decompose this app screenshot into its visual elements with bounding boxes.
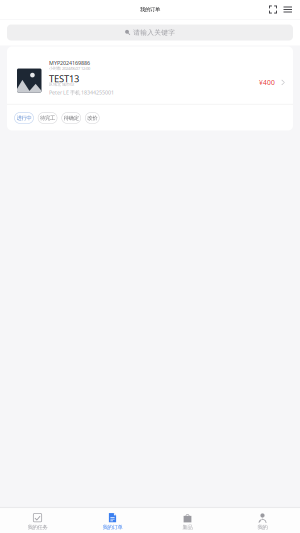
- staticText: 我的订单: [140, 6, 160, 13]
- staticText: 区域北 城市02: [49, 81, 74, 87]
- staticText: 我的订单: [102, 524, 122, 531]
- button[interactable]: 菜单: [280, 2, 296, 17]
- staticText: 小时数 2024/06/27 12:00: [49, 66, 90, 71]
- button[interactable]: 扫一扫: [266, 1, 280, 17]
- staticText: TEST13: [49, 72, 79, 85]
- button[interactable]: 进行中: [14, 112, 33, 123]
- button[interactable]: 待确定: [62, 112, 81, 123]
- staticText: 改价: [87, 115, 97, 121]
- button[interactable]: 我的: [225, 507, 300, 533]
- staticText: ¥400: [259, 78, 275, 87]
- staticText: 我的: [257, 524, 267, 531]
- button[interactable]: 改价: [85, 112, 99, 123]
- button[interactable]: 新品: [150, 507, 225, 533]
- button[interactable]: 我的任务: [0, 507, 75, 533]
- staticText: 待完工: [40, 115, 55, 121]
- staticText: 待确定: [64, 115, 79, 121]
- staticText: 请输入关键字: [133, 28, 175, 37]
- button[interactable]: MYP2024169886: [7, 46, 293, 104]
- staticText: 我的任务: [27, 524, 47, 531]
- staticText: MYP2024169886: [49, 59, 90, 67]
- staticText: 新品: [182, 524, 192, 531]
- button[interactable]: 我的订单: [75, 507, 150, 533]
- staticText: 进行中: [16, 115, 31, 121]
- staticText: Peter LE 手机 18344255001: [49, 89, 114, 96]
- button[interactable]: 待完工: [38, 112, 57, 123]
